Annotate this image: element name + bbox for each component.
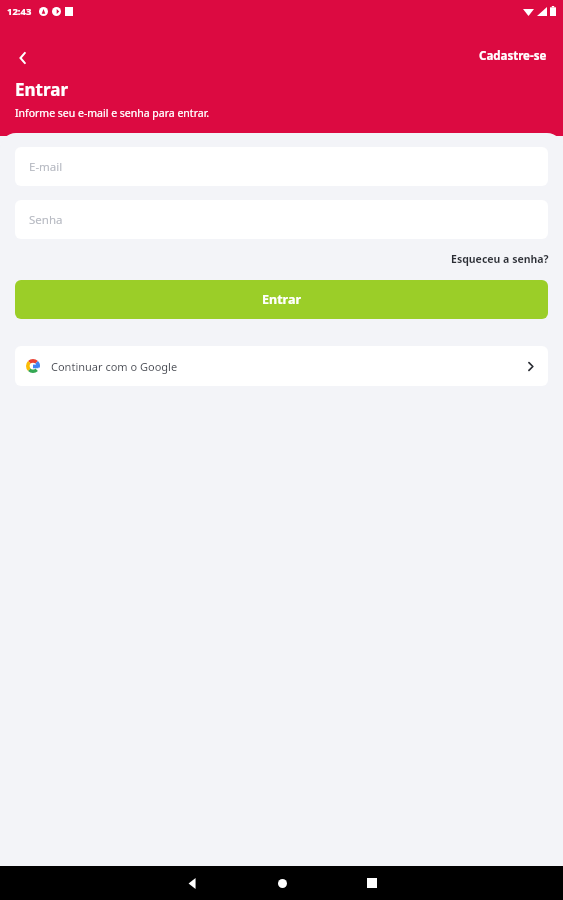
button[interactable]: Voltar bbox=[169, 866, 215, 900]
button[interactable]: Continuar com o Google bbox=[15, 346, 548, 386]
staticText: 12:43 bbox=[7, 5, 32, 18]
staticText: Entrar bbox=[15, 78, 68, 101]
button[interactable]: Senha bbox=[15, 200, 548, 239]
button[interactable]: Esqueceu a senha? bbox=[444, 248, 556, 270]
staticText: Senha bbox=[29, 212, 63, 228]
button[interactable]: Recentes bbox=[349, 866, 395, 900]
staticText: E-mail bbox=[29, 159, 63, 175]
button[interactable]: Cadastre-se bbox=[471, 43, 555, 69]
staticText: Continuar com o Google bbox=[51, 359, 178, 374]
staticText: Informe seu e-mail e senha para entrar. bbox=[15, 106, 210, 120]
button[interactable]: Início bbox=[259, 866, 305, 900]
staticText: Cadastre-se bbox=[479, 48, 547, 64]
staticText: Esqueceu a senha? bbox=[451, 252, 549, 266]
button[interactable]: E-mail bbox=[15, 147, 548, 186]
staticText: Entrar bbox=[262, 291, 301, 308]
button[interactable]: Entrar bbox=[15, 280, 548, 319]
button[interactable]: Voltar bbox=[6, 41, 40, 75]
